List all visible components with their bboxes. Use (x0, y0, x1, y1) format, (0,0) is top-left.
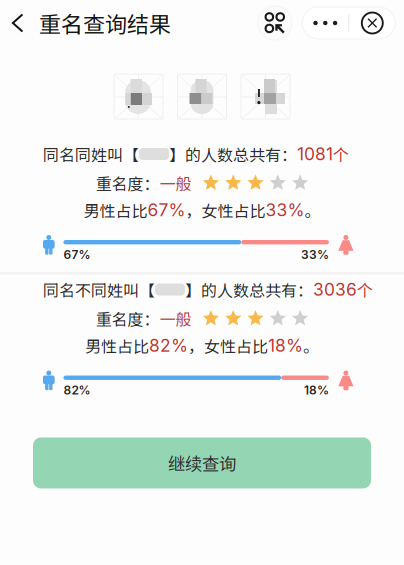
staticText: 同名不同姓叫 (43, 278, 139, 301)
staticText: 重名度： (95, 307, 159, 330)
staticText: 重名度： (95, 171, 159, 195)
staticText: ，女性占比 (185, 198, 265, 222)
staticText: 的人数总共有： (185, 142, 297, 166)
staticText: 33% (265, 199, 304, 220)
staticText: 一般 (159, 171, 191, 195)
staticText: 【 (139, 278, 155, 301)
staticText: 82% (149, 335, 188, 356)
staticText: 67% (147, 199, 185, 220)
staticText: 继续查询 (168, 450, 236, 475)
staticText: 一般 (159, 307, 191, 330)
button[interactable]: Close (349, 7, 395, 39)
staticText: ，女性占比 (188, 334, 268, 357)
staticText: 男性占比 (83, 198, 147, 222)
staticText: 同名同姓叫 (43, 142, 123, 166)
staticText: 67% (63, 247, 90, 262)
button[interactable]: 继续查询 (33, 437, 371, 488)
staticText: 的人数总共有： (201, 278, 313, 301)
staticText: 【 (123, 142, 139, 166)
staticText: 】 (169, 142, 185, 166)
staticText: 1081 (297, 143, 333, 164)
staticText: 。 (304, 198, 320, 222)
staticText: 个 (357, 278, 373, 301)
staticText: 82% (63, 383, 90, 397)
button[interactable]: More (302, 7, 348, 39)
staticText: 18% (304, 383, 329, 397)
button[interactable]: Mini program menu (258, 6, 292, 40)
staticText: 。 (303, 334, 319, 357)
staticText: 33% (301, 247, 329, 262)
staticText: 个 (333, 142, 349, 166)
button[interactable]: Back (0, 0, 34, 46)
staticText: 3036 (313, 279, 357, 300)
staticText: 】 (185, 278, 201, 301)
staticText: 男性占比 (85, 334, 149, 357)
staticText: 18% (268, 335, 303, 356)
staticText: 重名查询结果 (39, 7, 171, 39)
